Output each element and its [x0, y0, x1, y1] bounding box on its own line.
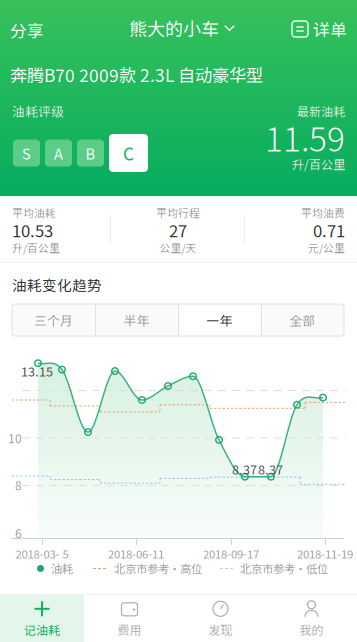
staticText: 8 — [15, 476, 22, 494]
staticText: 三个月 — [34, 311, 73, 329]
staticText: 熊大的小车 — [129, 15, 219, 41]
staticText: A — [54, 142, 63, 164]
button[interactable]: S — [13, 139, 40, 166]
button[interactable]: 我的 — [266, 595, 357, 642]
staticText: 详单 — [313, 17, 347, 41]
staticText: 升/百公里 — [12, 240, 60, 255]
button[interactable]: B — [77, 139, 104, 166]
staticText: 最新油耗 — [297, 102, 345, 120]
button[interactable]: C — [109, 134, 148, 172]
staticText: 分享 — [10, 18, 44, 42]
staticText: 元/公里 — [308, 240, 345, 255]
button[interactable]: 记油耗 — [0, 595, 84, 642]
staticText: B — [85, 142, 95, 164]
button[interactable]: 详单 — [292, 14, 349, 44]
staticText: 10.53 — [12, 218, 53, 242]
staticText: 平均行程 — [156, 205, 200, 220]
button[interactable]: 费用 — [84, 595, 175, 642]
staticText: 北京市参考·低位 — [240, 560, 328, 576]
button[interactable]: A — [45, 139, 72, 166]
staticText: 平均油费 — [301, 205, 345, 220]
staticText: 发现 — [208, 621, 232, 638]
staticText: S — [22, 142, 31, 164]
staticText: 0.71 — [313, 218, 345, 242]
staticText: 10 — [8, 429, 22, 447]
button[interactable]: 全部 — [261, 304, 344, 336]
staticText: 2018-06-11 — [108, 545, 164, 562]
staticText: 13.15 — [21, 362, 53, 380]
staticText: 11.59 — [265, 113, 345, 161]
staticText: 北京市参考·高位 — [114, 560, 202, 576]
button[interactable]: 分享 — [0, 14, 66, 46]
staticText: C — [123, 140, 134, 166]
staticText: 升/百公里 — [292, 155, 345, 173]
staticText: 2018-03- 5 — [15, 545, 68, 562]
staticText: 27 — [169, 218, 187, 242]
staticText: 我的 — [299, 621, 323, 638]
staticText: 公里/天 — [159, 240, 196, 255]
staticText: 油耗 — [51, 560, 73, 576]
staticText: 记油耗 — [24, 621, 60, 638]
staticText: 8.37 — [258, 460, 283, 478]
staticText: 油耗评级 — [12, 102, 64, 120]
staticText: 费用 — [117, 621, 141, 638]
staticText: 2018-09-17 — [203, 545, 259, 562]
button[interactable]: 半年 — [95, 304, 178, 336]
staticText: 一年 — [206, 311, 232, 329]
staticText: 平均油耗 — [12, 205, 56, 220]
staticText: 全部 — [289, 311, 315, 329]
staticText: 油耗变化趋势 — [12, 274, 102, 295]
button[interactable]: 三个月 — [12, 304, 95, 336]
button[interactable]: 发现 — [175, 595, 266, 642]
staticText: 半年 — [123, 311, 149, 329]
button[interactable]: 一年 — [178, 304, 261, 336]
button[interactable]: 熊大的小车 — [122, 13, 242, 43]
staticText: 6 — [15, 524, 22, 542]
staticText: 奔腾B70 2009款 2.3L 自动豪华型 — [10, 62, 263, 87]
staticText: 2018-11-19 — [297, 545, 353, 562]
staticText: 8.37 — [232, 460, 257, 478]
